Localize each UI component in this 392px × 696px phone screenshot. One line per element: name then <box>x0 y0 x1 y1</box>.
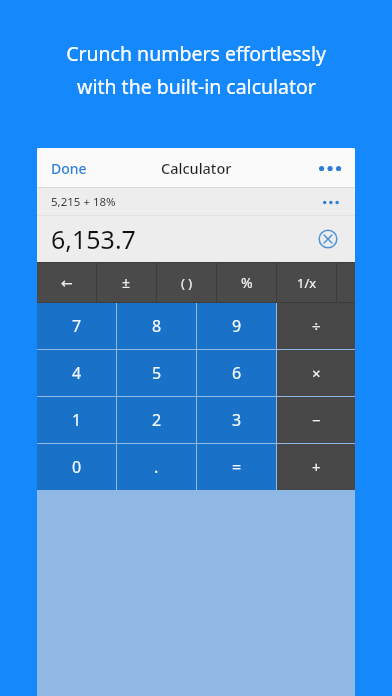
staticText: 1 <box>72 409 82 431</box>
staticText: ÷ <box>312 316 321 336</box>
staticText: 7 <box>72 315 82 337</box>
staticText: ( ) <box>181 274 193 292</box>
staticText: 8 <box>152 315 162 337</box>
button[interactable]: 3 <box>197 397 276 443</box>
staticText: − <box>312 410 321 430</box>
staticText: . <box>154 456 159 478</box>
button[interactable]: 8 <box>117 303 196 349</box>
button[interactable]: + <box>277 444 355 490</box>
button[interactable]: ± <box>97 263 156 302</box>
staticText: % <box>241 273 253 292</box>
staticText: 5 <box>152 362 162 384</box>
staticText: ← <box>61 275 73 291</box>
staticText: 2 <box>152 409 162 431</box>
button[interactable]: 2 <box>117 397 196 443</box>
button[interactable]: ÷ <box>277 303 355 349</box>
button[interactable]: 1 <box>37 397 116 443</box>
staticText: = <box>232 456 242 478</box>
other: Expression options <box>323 201 339 204</box>
staticText: Calculator <box>161 158 232 178</box>
button[interactable]: % <box>217 263 276 302</box>
button[interactable]: More options <box>305 148 355 188</box>
staticText: 9 <box>232 315 242 337</box>
button[interactable]: 1/x <box>277 263 336 302</box>
staticText: 0 <box>72 456 82 478</box>
button[interactable]: 7 <box>37 303 116 349</box>
staticText: 3 <box>232 409 242 431</box>
staticText: Crunch numbers effortlessly <box>66 40 326 67</box>
staticText: 5,215 + 18% <box>51 194 116 210</box>
button[interactable]: Done <box>37 148 101 188</box>
button[interactable]: 5,215 + 18% <box>37 188 355 216</box>
button[interactable]: 5 <box>117 350 196 396</box>
button[interactable]: 0 <box>37 444 116 490</box>
button[interactable]: ← <box>37 263 96 302</box>
staticText: with the built-in calculator <box>77 73 316 100</box>
button[interactable]: × <box>277 350 355 396</box>
button[interactable]: . <box>117 444 196 490</box>
button[interactable]: ( ) <box>157 263 216 302</box>
staticText: 6 <box>232 362 242 384</box>
button[interactable]: 6 <box>197 350 276 396</box>
button[interactable]: − <box>277 397 355 443</box>
staticText: Done <box>51 159 87 178</box>
staticText: + <box>312 457 321 477</box>
staticText: 1/x <box>297 274 317 292</box>
button[interactable]: Clear <box>315 226 341 252</box>
button[interactable]: 4 <box>37 350 116 396</box>
button[interactable]: = <box>197 444 276 490</box>
staticText: × <box>312 363 321 383</box>
button[interactable]: 9 <box>197 303 276 349</box>
staticText: ± <box>122 273 131 292</box>
staticText: 4 <box>72 362 82 384</box>
staticText: 6,153.7 <box>51 222 136 256</box>
